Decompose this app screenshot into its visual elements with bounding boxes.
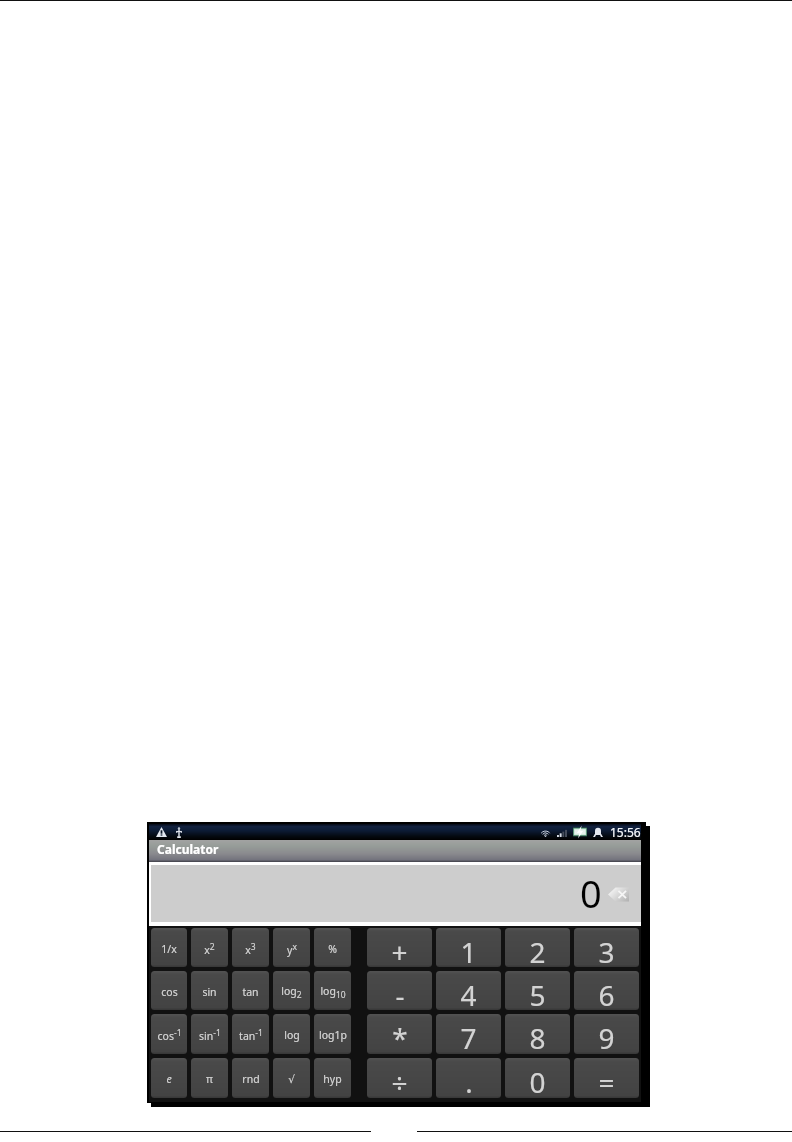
button[interactable]: 4 [436, 971, 501, 1010]
staticText: log10 [320, 984, 346, 1000]
staticText: tan [242, 985, 259, 999]
button[interactable]: Delete [608, 887, 629, 902]
button[interactable]: tan-1 [232, 1014, 269, 1054]
staticText: yx [287, 941, 297, 957]
staticText: rnd [242, 1072, 260, 1086]
staticText: 4 [460, 976, 477, 1010]
staticText: 15:56 [610, 824, 641, 840]
staticText: 2 [529, 933, 546, 967]
button[interactable]: log2 [273, 971, 310, 1010]
staticText: tan-1 [239, 1027, 263, 1043]
button[interactable]: sin-1 [191, 1014, 228, 1054]
button[interactable]: 5 [505, 971, 570, 1010]
staticText: log [284, 1028, 300, 1042]
staticText: 3 [598, 933, 615, 967]
staticText: x3 [245, 941, 256, 957]
button[interactable]: √ [273, 1058, 310, 1098]
button[interactable]: 0 [505, 1058, 570, 1098]
button[interactable]: 1/x [151, 928, 187, 967]
staticText: log1p [319, 1028, 347, 1042]
button[interactable]: = [574, 1058, 639, 1098]
button[interactable]: e [151, 1058, 187, 1098]
button[interactable]: cos-1 [151, 1014, 187, 1054]
button[interactable]: + [367, 928, 432, 967]
staticText: e [166, 1072, 172, 1086]
button[interactable]: % [314, 928, 351, 967]
button[interactable]: log1p [314, 1014, 351, 1054]
button[interactable]: x2 [191, 928, 228, 967]
staticText: cos-1 [157, 1027, 182, 1043]
button[interactable]: - [367, 971, 432, 1010]
button[interactable]: hyp [314, 1058, 351, 1098]
staticText: Calculator [157, 841, 219, 857]
staticText: * [392, 1019, 408, 1054]
staticText: log2 [281, 984, 302, 1000]
button[interactable]: 6 [574, 971, 639, 1010]
staticText: 7 [460, 1019, 477, 1054]
button[interactable]: 7 [436, 1014, 501, 1054]
staticText: x2 [204, 941, 215, 957]
button[interactable]: * [367, 1014, 432, 1054]
button[interactable]: 3 [574, 928, 639, 967]
staticText: % [328, 942, 337, 956]
staticText: sin [202, 985, 217, 999]
staticText: 6 [598, 976, 615, 1010]
staticText: 8 [529, 1019, 546, 1054]
staticText: ÷ [391, 1063, 408, 1098]
button[interactable]: 9 [574, 1014, 639, 1054]
button[interactable]: ÷ [367, 1058, 432, 1098]
staticText: 9 [598, 1019, 615, 1054]
button[interactable]: 2 [505, 928, 570, 967]
staticText: 1/x [161, 942, 177, 956]
button[interactable]: . [436, 1058, 501, 1098]
staticText: . [465, 1063, 473, 1098]
staticText: √ [288, 1073, 295, 1085]
staticText: 0 [580, 867, 602, 919]
staticText: + [391, 933, 408, 967]
staticText: - [395, 976, 405, 1010]
staticText: hyp [323, 1072, 342, 1086]
button[interactable]: sin [191, 971, 228, 1010]
button[interactable]: cos [151, 971, 187, 1010]
staticText: 1 [460, 933, 477, 967]
button[interactable]: rnd [232, 1058, 269, 1098]
button[interactable]: tan [232, 971, 269, 1010]
staticText: 0 [529, 1063, 546, 1098]
button[interactable]: log [273, 1014, 310, 1054]
staticText: = [598, 1063, 615, 1098]
button[interactable]: 8 [505, 1014, 570, 1054]
staticText: sin-1 [199, 1027, 221, 1043]
button[interactable]: yx [273, 928, 310, 967]
staticText: 5 [529, 976, 546, 1010]
button[interactable]: x3 [232, 928, 269, 967]
button[interactable]: 1 [436, 928, 501, 967]
button[interactable]: log10 [314, 971, 351, 1010]
staticText: cos [161, 985, 178, 999]
staticText: π [206, 1072, 213, 1086]
button[interactable]: π [191, 1058, 228, 1098]
